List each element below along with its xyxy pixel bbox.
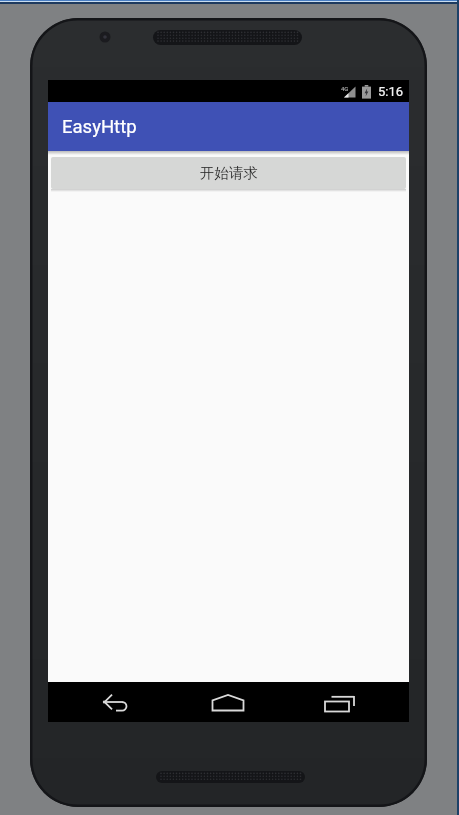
button[interactable] — [316, 682, 364, 722]
staticText: 5:16 — [378, 84, 404, 99]
button[interactable] — [96, 682, 144, 722]
button[interactable]: 开始请求 — [51, 157, 406, 189]
staticText: EasyHttp — [62, 116, 137, 138]
staticText: 4G — [341, 85, 349, 92]
staticText: 开始请求 — [200, 164, 258, 182]
button[interactable] — [204, 682, 252, 722]
